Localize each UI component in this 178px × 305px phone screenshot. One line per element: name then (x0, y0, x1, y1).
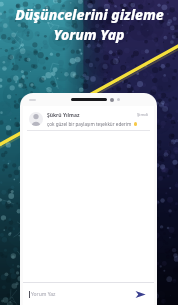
staticText: Yorum Yap (53, 25, 125, 44)
staticText: çok güzel bir paylaşım teşekkür ederim (47, 121, 132, 127)
staticText: Düşüncelerini gizleme (15, 5, 164, 24)
button[interactable]: Gönder (132, 286, 148, 302)
staticText: Şimdi (137, 112, 148, 118)
staticText: Şükrü Yılmaz (47, 112, 80, 119)
button[interactable]: Şükrü Yılmaz (27, 109, 150, 131)
staticText: Yorum Yaz (31, 291, 56, 298)
button[interactable]: Yorum Yaz (29, 291, 132, 298)
